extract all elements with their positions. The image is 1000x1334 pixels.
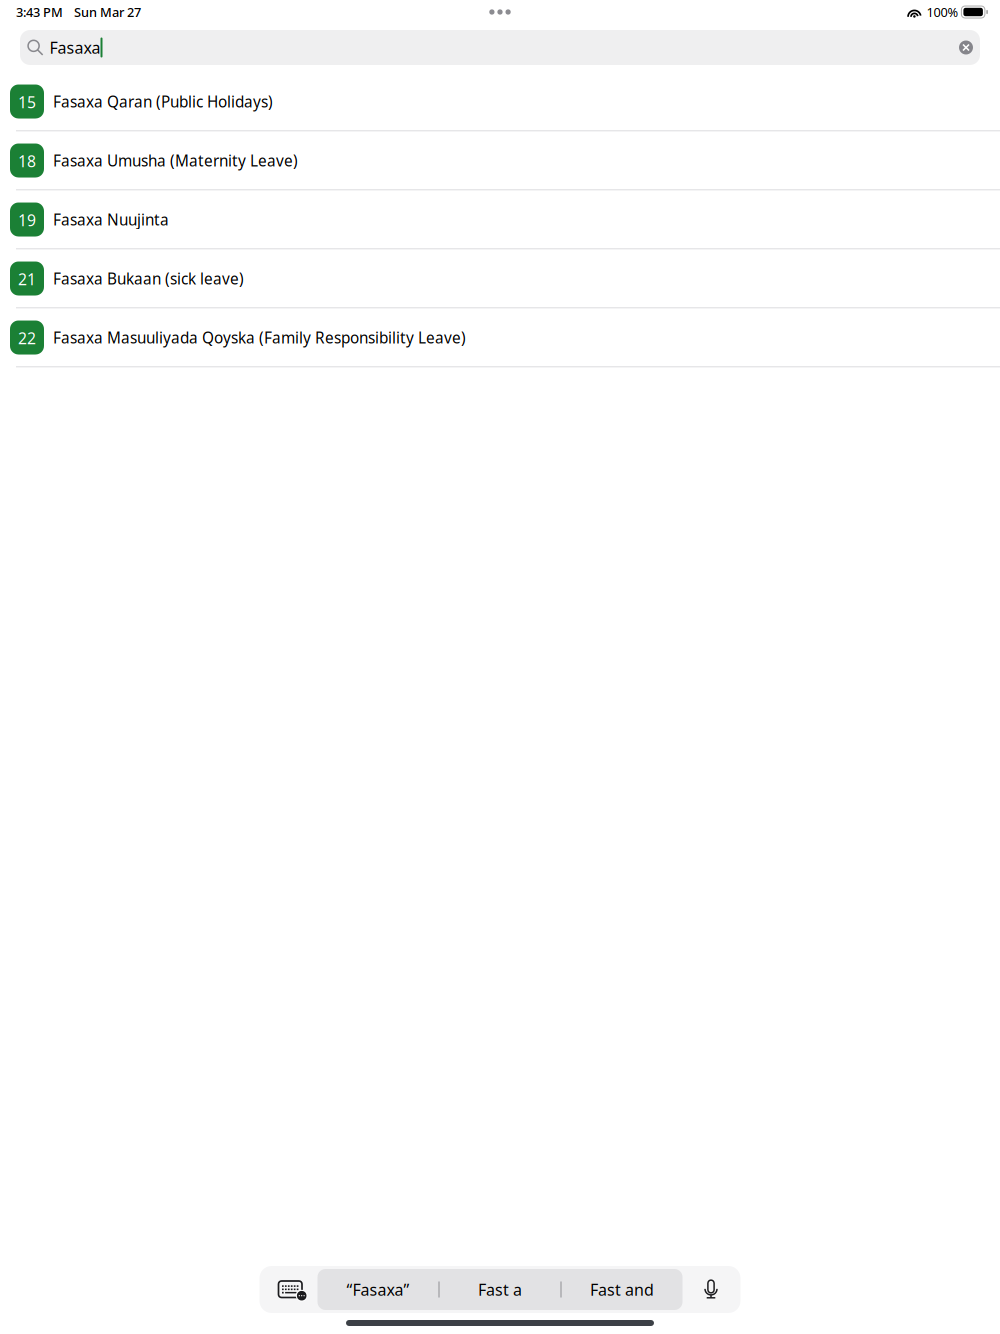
staticText: 22 <box>18 328 36 349</box>
staticText: Fasaxa Nuujinta <box>53 209 169 230</box>
staticText: Fasaxa <box>49 37 100 58</box>
staticText: 21 <box>18 269 36 290</box>
staticText: 3:43 PM <box>16 3 63 20</box>
staticText: Fasaxa Qaran (Public Holidays) <box>53 91 273 112</box>
staticText: Fasaxa Bukaan (sick leave) <box>53 268 244 289</box>
button[interactable]: Fast a <box>439 1269 560 1310</box>
button[interactable]: 19 <box>0 191 1000 250</box>
button[interactable]: Dictate <box>682 1266 739 1313</box>
button[interactable]: Fast and <box>561 1269 682 1310</box>
button[interactable]: Keyboard options <box>260 1266 317 1313</box>
button[interactable]: 21 <box>0 250 1000 309</box>
staticText: Fast a <box>478 1279 522 1300</box>
button[interactable]: Clear text <box>953 31 980 63</box>
staticText: 19 <box>18 210 36 231</box>
staticText: 18 <box>18 151 36 172</box>
button[interactable]: 15 <box>0 73 1000 132</box>
staticText: Fast and <box>590 1279 654 1300</box>
button[interactable]: 22 <box>0 309 1000 368</box>
button[interactable]: “Fasaxa” <box>317 1269 438 1310</box>
staticText: Fasaxa Masuuliyada Qoyska (Family Respon… <box>53 327 466 348</box>
staticText: 15 <box>18 92 36 113</box>
staticText: “Fasaxa” <box>346 1279 409 1300</box>
staticText: Fasaxa Umusha (Maternity Leave) <box>53 150 298 171</box>
button[interactable]: 18 <box>0 132 1000 191</box>
staticText: 100% <box>926 3 958 20</box>
staticText: Sun Mar 27 <box>74 3 141 20</box>
